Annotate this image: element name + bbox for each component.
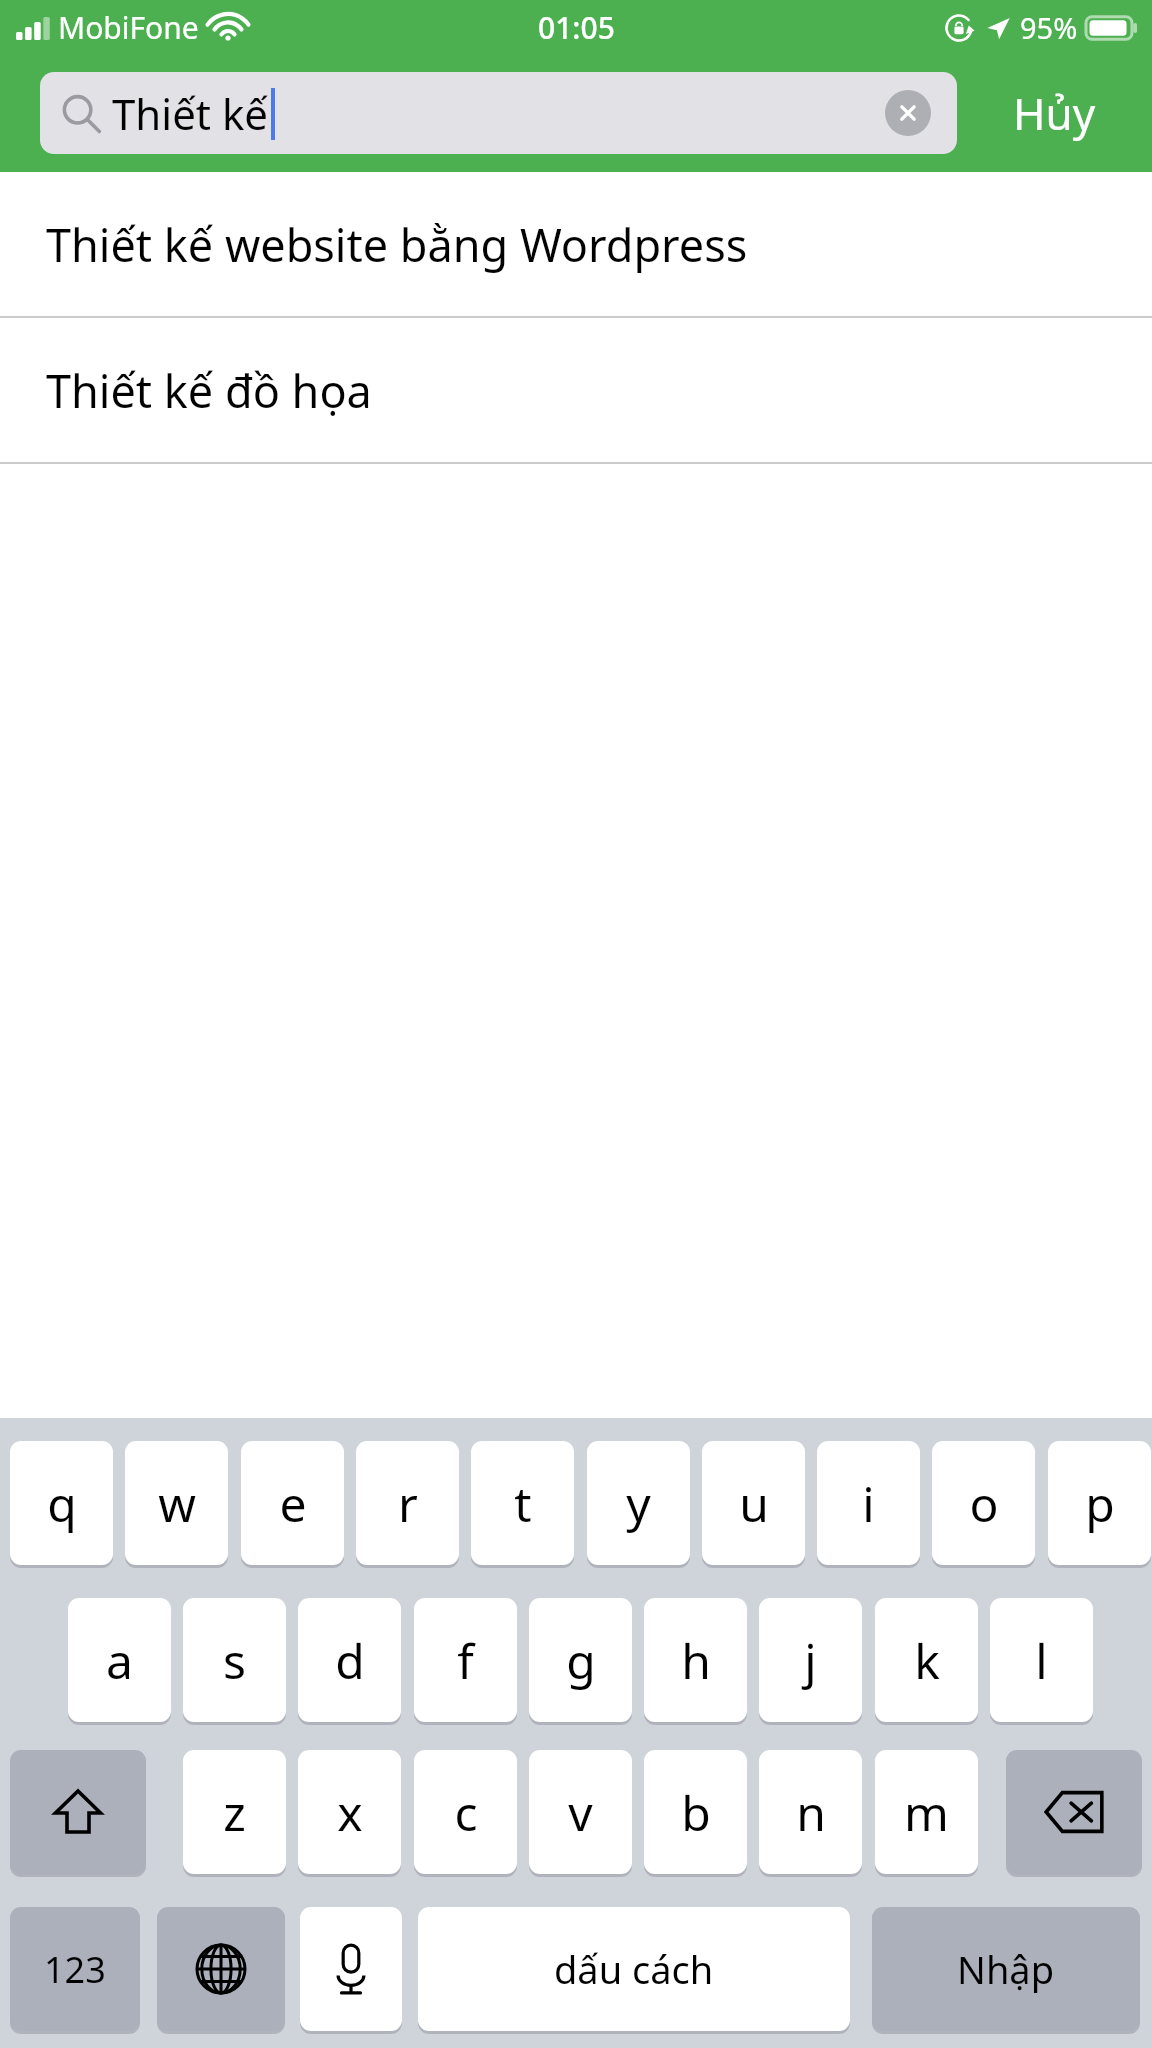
button[interactable]: b (644, 1750, 747, 1874)
button[interactable]: i (817, 1441, 920, 1565)
button[interactable]: k (875, 1598, 978, 1722)
staticText: 95% (1020, 8, 1078, 47)
button[interactable]: Nhập (872, 1907, 1140, 2031)
button[interactable]: r (356, 1441, 459, 1565)
staticText: v (568, 1780, 593, 1845)
staticText: j (804, 1628, 817, 1693)
button[interactable]: Dictate (300, 1907, 402, 2031)
staticText: z (223, 1780, 246, 1845)
staticText: q (47, 1471, 77, 1536)
staticText: Thiết kế đồ họa (46, 360, 372, 421)
staticText: a (106, 1628, 133, 1693)
staticText: 123 (44, 1945, 106, 1994)
button[interactable]: Change keyboard (157, 1907, 285, 2031)
staticText: p (1085, 1471, 1115, 1536)
button[interactable]: Numbers (10, 1907, 140, 2031)
staticText: e (279, 1471, 307, 1536)
button[interactable]: j (759, 1598, 862, 1722)
staticText: x (337, 1780, 363, 1845)
staticText: b (681, 1780, 711, 1845)
staticText: l (1035, 1628, 1048, 1693)
button[interactable]: t (471, 1441, 574, 1565)
staticText: h (681, 1628, 711, 1693)
button[interactable]: p (1048, 1441, 1151, 1565)
button[interactable]: a (68, 1598, 171, 1722)
button[interactable]: u (702, 1441, 805, 1565)
staticText: dấu cách (554, 1943, 714, 1995)
button[interactable]: Thiết kế (40, 72, 957, 154)
button[interactable]: o (932, 1441, 1035, 1565)
button[interactable]: s (183, 1598, 286, 1722)
button[interactable]: f (414, 1598, 517, 1722)
button[interactable]: m (875, 1750, 978, 1874)
button[interactable]: y (587, 1441, 690, 1565)
staticText: t (514, 1471, 532, 1536)
button[interactable]: z (183, 1750, 286, 1874)
staticText: f (457, 1628, 474, 1693)
staticText: s (223, 1628, 246, 1693)
button[interactable]: Clear text (885, 90, 931, 136)
button[interactable]: x (298, 1750, 401, 1874)
staticText: k (914, 1628, 940, 1693)
staticText: Hủy (1013, 83, 1096, 143)
button[interactable]: Thiết kế đồ họa (0, 318, 1152, 462)
staticText: 01:05 (538, 7, 615, 48)
staticText: o (969, 1471, 999, 1536)
button[interactable]: dấu cách (418, 1907, 850, 2031)
staticText: m (904, 1780, 949, 1845)
staticText: u (739, 1471, 769, 1536)
staticText: MobiFone (58, 7, 199, 48)
button[interactable]: Shift (10, 1750, 146, 1874)
button[interactable]: v (529, 1750, 632, 1874)
button[interactable]: Hủy (957, 54, 1152, 172)
button[interactable]: d (298, 1598, 401, 1722)
staticText: n (796, 1780, 826, 1845)
button[interactable]: h (644, 1598, 747, 1722)
staticText: i (862, 1471, 875, 1536)
staticText: Thiết kế (112, 85, 269, 142)
staticText: y (626, 1471, 651, 1536)
button[interactable]: w (125, 1441, 228, 1565)
staticText: w (158, 1471, 196, 1536)
button[interactable]: q (10, 1441, 113, 1565)
staticText: d (335, 1628, 365, 1693)
button[interactable]: c (414, 1750, 517, 1874)
button[interactable]: g (529, 1598, 632, 1722)
staticText: r (398, 1471, 418, 1536)
button[interactable]: l (990, 1598, 1093, 1722)
button[interactable]: Backspace (1006, 1750, 1142, 1874)
staticText: c (454, 1780, 478, 1845)
staticText: Thiết kế website bằng Wordpress (46, 214, 748, 275)
button[interactable]: n (759, 1750, 862, 1874)
staticText: g (566, 1628, 596, 1693)
staticText: Nhập (957, 1943, 1055, 1995)
button[interactable]: e (241, 1441, 344, 1565)
button[interactable]: Thiết kế website bằng Wordpress (0, 172, 1152, 316)
